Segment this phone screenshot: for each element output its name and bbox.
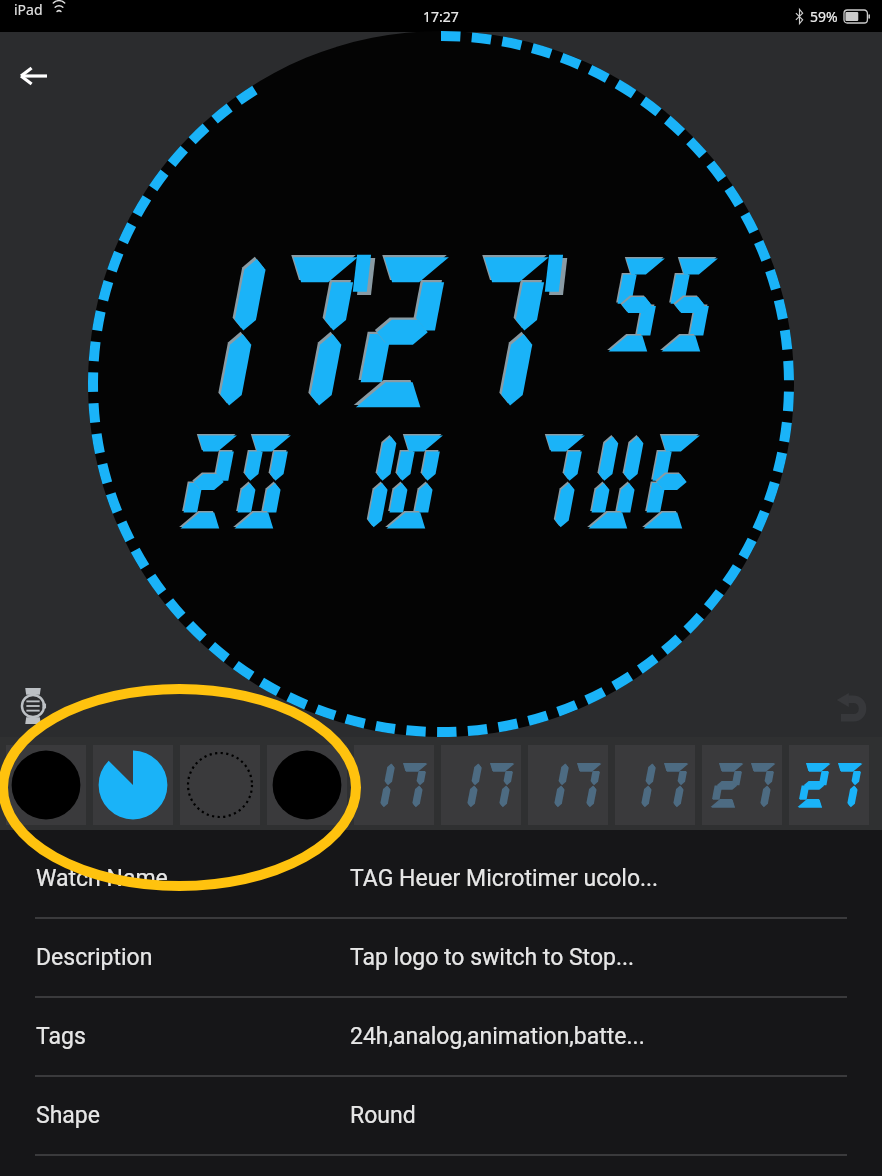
staticText: 24h,analog,animation,batte... xyxy=(350,1023,645,1050)
button[interactable]: Watch Name xyxy=(0,840,882,919)
button[interactable]: Description xyxy=(0,919,882,998)
button[interactable]: Watch style 2 xyxy=(93,745,173,825)
staticText: Tap logo to switch to Stop... xyxy=(350,944,635,971)
button[interactable]: Watch style 3 xyxy=(180,745,260,825)
button[interactable]: Back xyxy=(10,52,58,100)
button[interactable]: Tags xyxy=(0,998,882,1077)
button[interactable]: Watch style 4 xyxy=(267,745,347,825)
staticText: Shape xyxy=(36,1102,100,1129)
button[interactable]: Frame 2 xyxy=(441,745,521,825)
button[interactable]: Frame 5 xyxy=(702,745,782,825)
button[interactable]: Frame 4 xyxy=(615,745,695,825)
button[interactable]: Frame 6 xyxy=(789,745,869,825)
staticText: 59% xyxy=(810,7,838,26)
button[interactable]: Shape xyxy=(0,1077,882,1156)
staticText: Round xyxy=(350,1102,416,1129)
staticText: Watch Name xyxy=(36,865,168,892)
button[interactable]: Frame 1 xyxy=(354,745,434,825)
button[interactable]: Frame 3 xyxy=(528,745,608,825)
button[interactable]: Watch shape xyxy=(14,687,52,725)
staticText: Tags xyxy=(36,1023,86,1050)
staticText: TAG Heuer Microtimer ucolo... xyxy=(350,865,659,892)
staticText: 17:27 xyxy=(423,7,459,26)
staticText: Description xyxy=(36,944,153,971)
button[interactable]: Undo xyxy=(831,688,869,726)
staticText: iPad xyxy=(14,0,43,19)
button[interactable]: Watch style 1 xyxy=(6,745,86,825)
